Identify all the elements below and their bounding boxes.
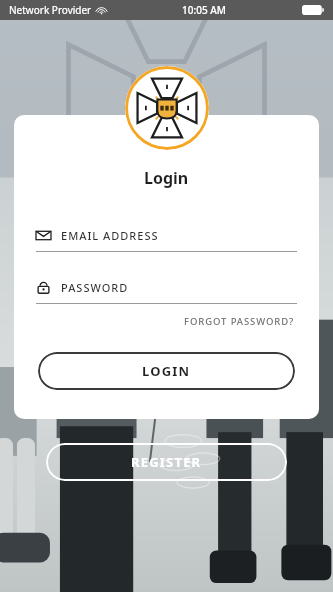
staticText: LOGIN	[142, 362, 191, 380]
staticText: REGISTER	[131, 453, 202, 471]
staticText: FORGOT PASSWORD?	[184, 315, 295, 328]
button[interactable]: FORGOT PASSWORD?	[182, 313, 297, 330]
button[interactable]: PASSWORD	[36, 280, 297, 304]
staticText: Login	[144, 167, 189, 189]
button[interactable]: EMAIL ADDRESS	[36, 228, 297, 252]
staticText: PASSWORD	[61, 280, 129, 295]
staticText: EMAIL ADDRESS	[61, 228, 159, 243]
button[interactable]: REGISTER	[46, 443, 287, 481]
staticText: 10:05 AM	[182, 3, 226, 17]
other: IATSE Local 479 logo	[125, 66, 209, 150]
staticText: Network Provider	[9, 3, 92, 17]
button[interactable]: LOGIN	[38, 352, 295, 390]
